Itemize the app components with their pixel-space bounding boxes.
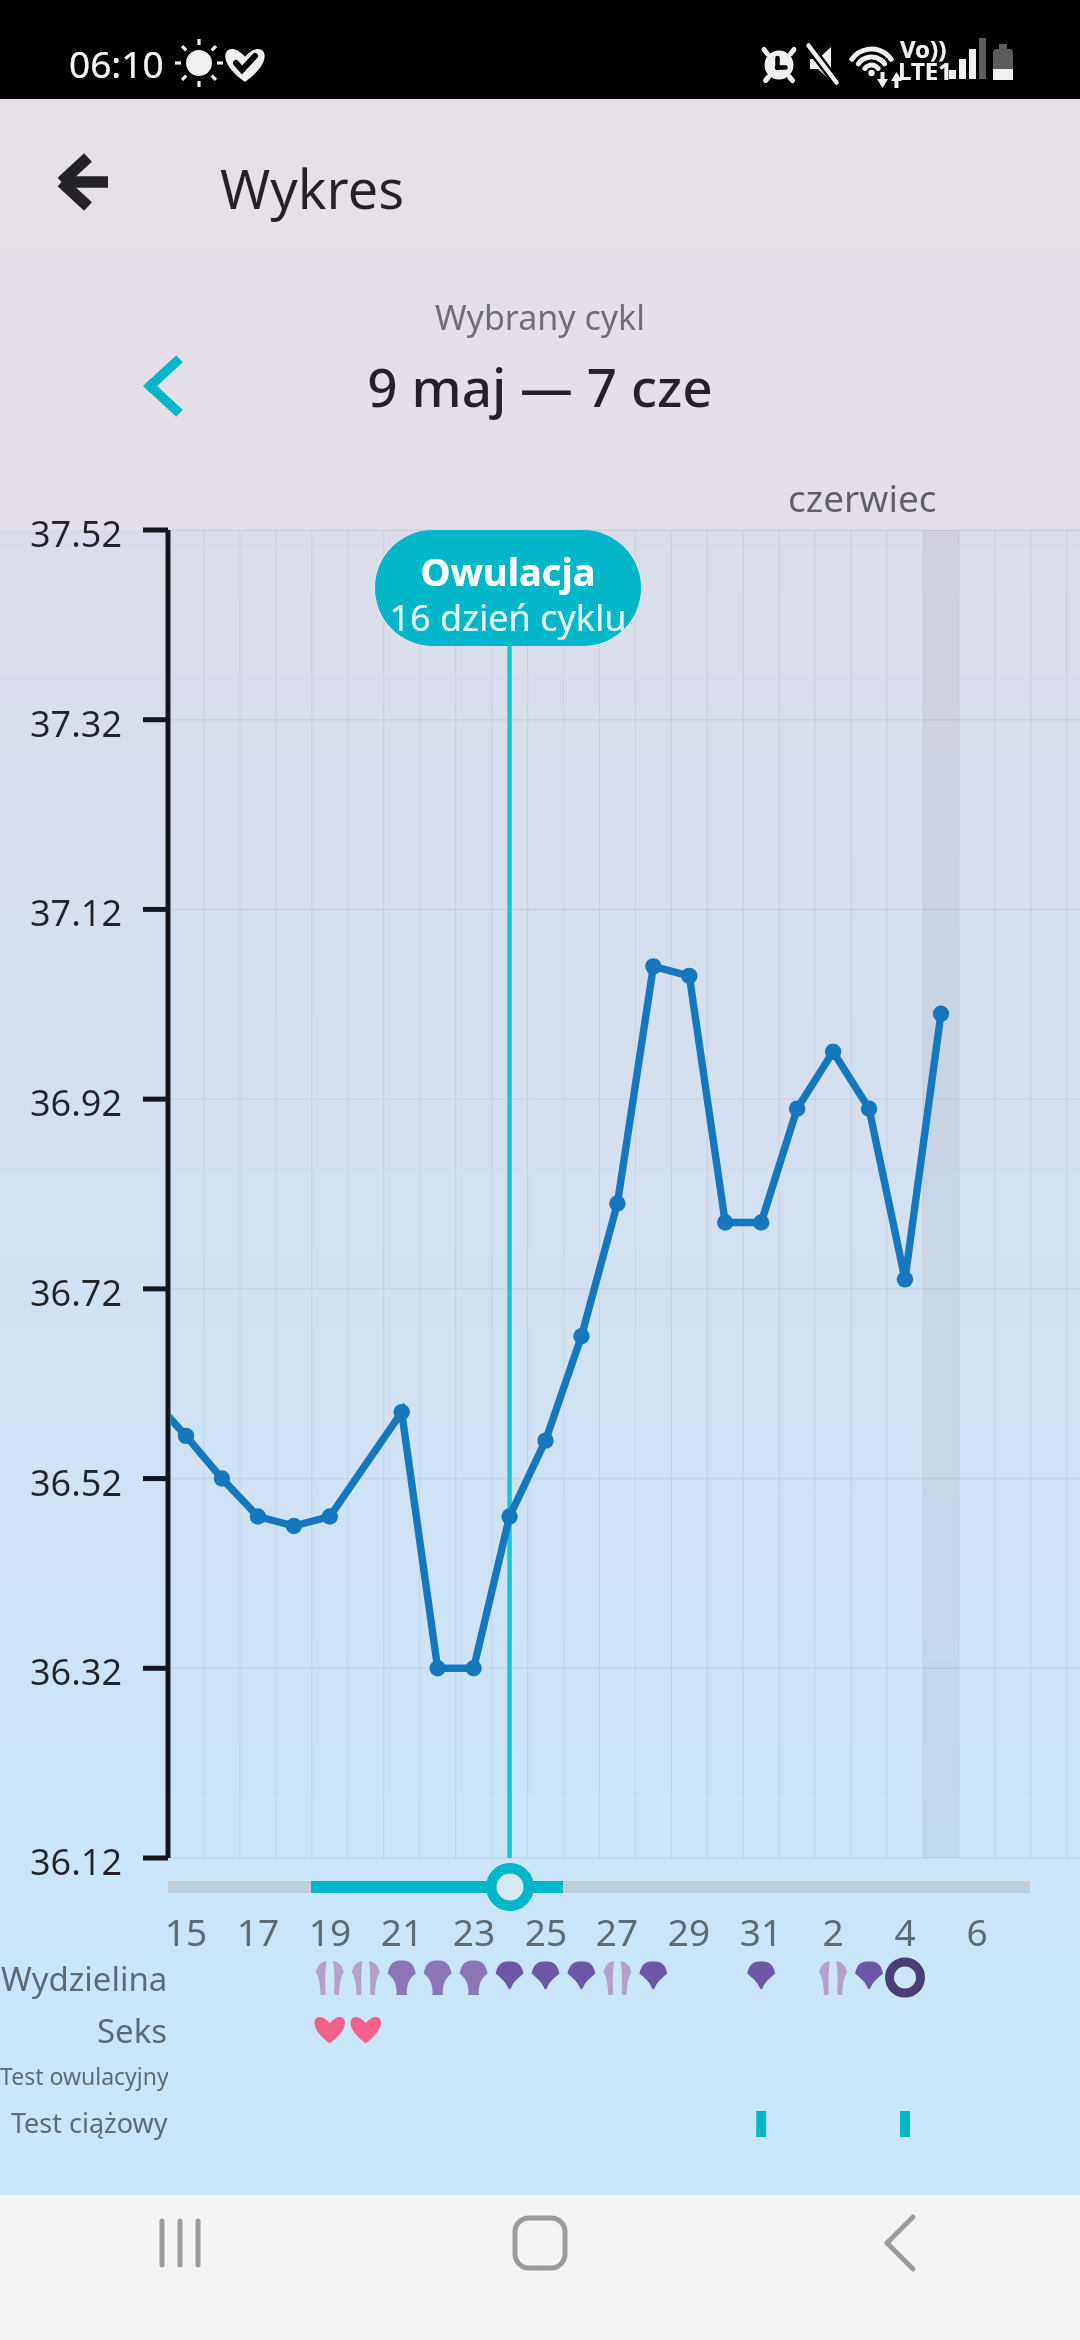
staticText: Wydzielina [1,1956,168,2000]
staticText: Seks [97,2008,168,2052]
staticText: 15 [146,1906,226,1956]
staticText: Wykres [220,151,405,225]
staticText: 19 [290,1906,370,1956]
staticText: 36.72 [0,1268,122,1317]
staticText: 6 [937,1906,1017,1956]
staticText: 9 maj — 7 cze [0,350,1080,422]
staticText: 36.52 [0,1458,122,1507]
button[interactable]: Back [36,134,136,234]
staticText: czerwiec [788,472,937,522]
staticText: 36.12 [0,1837,122,1886]
staticText: 16 dzień cyklu [375,593,641,642]
staticText: 27 [577,1906,657,1956]
staticText: Test owulacyjny [0,2060,168,2091]
staticText: 36.92 [0,1078,122,1127]
staticText: Owulacja [375,545,641,597]
staticText: 37.32 [0,699,122,748]
staticText: 36.32 [0,1647,122,1696]
button[interactable]: Back [720,2195,1080,2340]
staticText: Vo)) [900,32,947,65]
staticText: 31 [721,1906,801,1956]
button[interactable]: Recent apps [0,2195,360,2340]
button[interactable]: Previous cycle [110,338,206,434]
staticText: 37.52 [0,509,122,558]
button[interactable]: Owulacja [375,530,641,646]
staticText: LTE1 [898,54,952,87]
staticText: 23 [434,1906,514,1956]
staticText: Wybrany cykl [0,294,1080,340]
staticText: 2 [793,1906,873,1956]
staticText: 21 [362,1906,442,1956]
staticText: 29 [649,1906,729,1956]
button[interactable]: Home [360,2195,720,2340]
staticText: 4 [865,1906,945,1956]
staticText: 06:10 [69,38,164,88]
staticText: 25 [506,1906,586,1956]
staticText: 37.12 [0,888,122,937]
staticText: 17 [218,1906,298,1956]
staticText: Test ciążowy [11,2104,168,2141]
